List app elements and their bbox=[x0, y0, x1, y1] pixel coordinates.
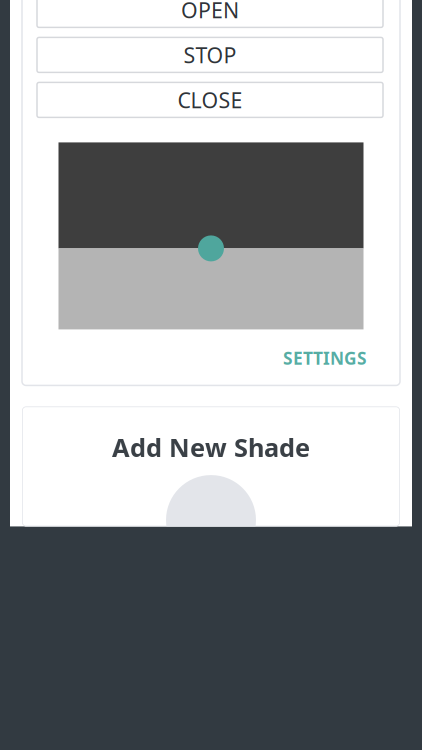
staticText: OPEN bbox=[181, 0, 239, 24]
staticText: CLOSE bbox=[177, 86, 242, 114]
staticText: SETTINGS bbox=[283, 346, 367, 369]
button[interactable]: OPEN bbox=[37, 0, 383, 27]
button[interactable]: CLOSE bbox=[37, 82, 383, 117]
staticText: Add New Shade bbox=[112, 430, 310, 464]
button[interactable]: SETTINGS bbox=[279, 340, 371, 375]
button[interactable]: Add New Shade bbox=[22, 406, 400, 526]
staticText: STOP bbox=[183, 41, 236, 69]
button[interactable]: STOP bbox=[37, 37, 383, 72]
